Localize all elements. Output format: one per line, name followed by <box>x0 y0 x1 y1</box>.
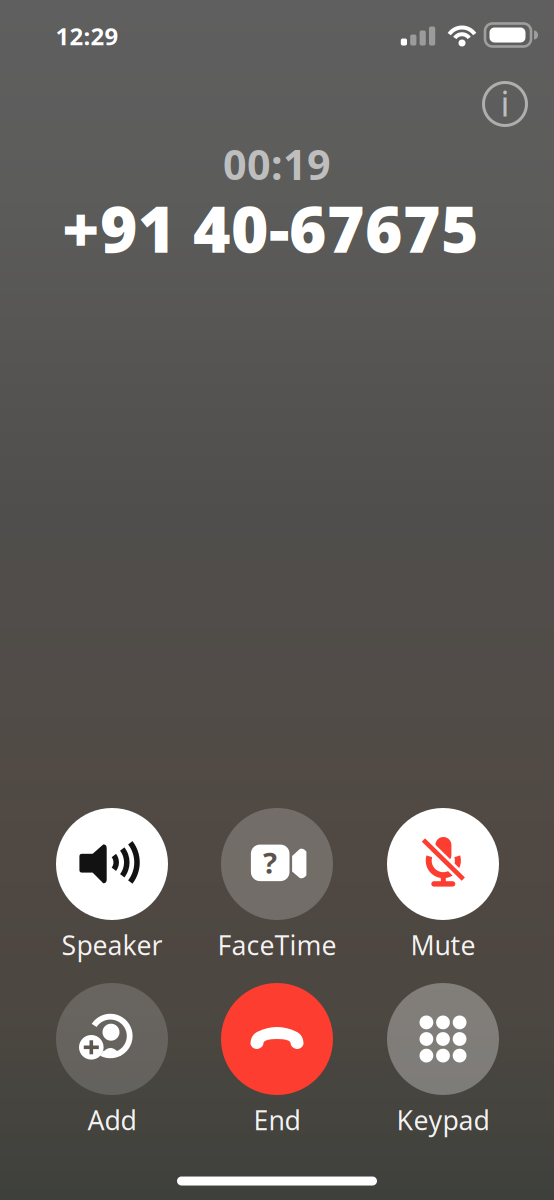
button[interactable]: End <box>202 983 352 1139</box>
button[interactable]: Speaker <box>37 808 187 964</box>
staticText: Mute <box>410 927 475 963</box>
button[interactable]: ? <box>202 808 352 964</box>
staticText: 00:19 <box>223 137 331 191</box>
staticText: 12:29 <box>55 20 118 52</box>
button[interactable]: Call information <box>474 73 536 135</box>
staticText: FaceTime <box>217 927 336 963</box>
staticText: +91 40-67675 <box>62 185 479 270</box>
staticText: ? <box>263 843 277 882</box>
staticText: i <box>500 80 509 126</box>
staticText: Add <box>87 1102 136 1138</box>
staticText: Keypad <box>396 1102 489 1138</box>
button[interactable]: Mute <box>368 808 518 964</box>
button[interactable]: Keypad <box>368 983 518 1139</box>
staticText: End <box>253 1102 300 1138</box>
staticText: Speaker <box>61 927 162 963</box>
button[interactable]: Add <box>37 983 187 1139</box>
